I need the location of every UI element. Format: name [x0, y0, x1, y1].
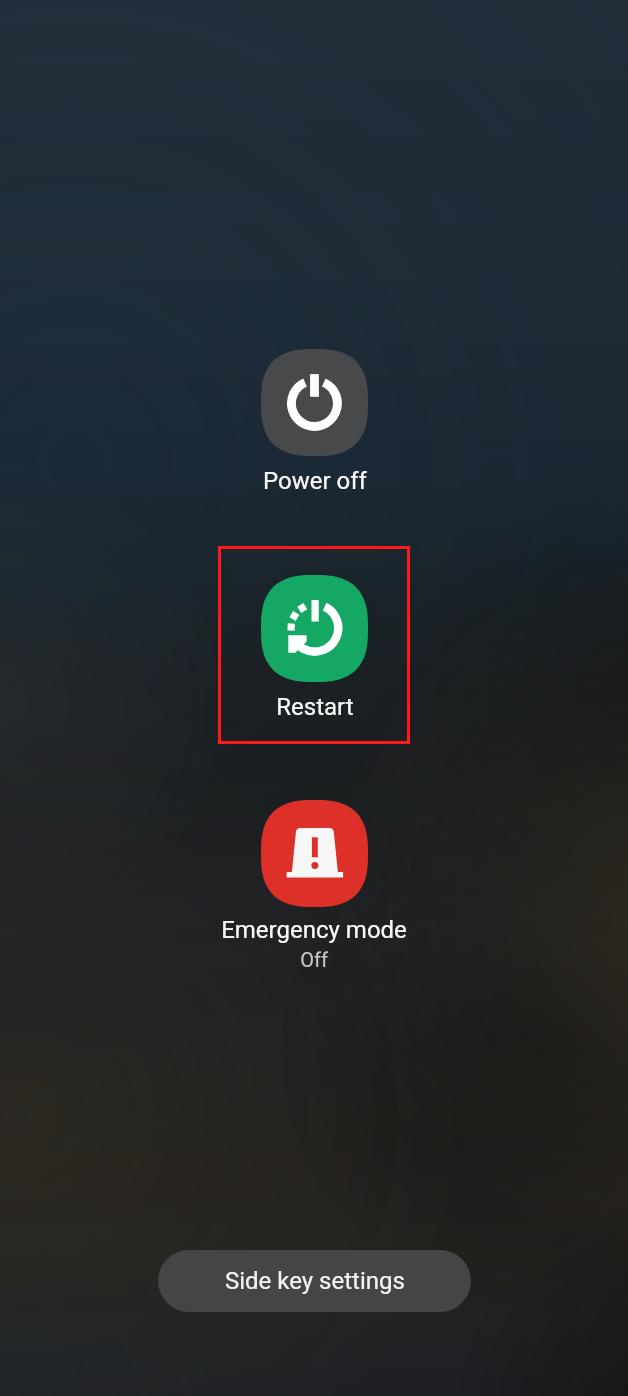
- button[interactable]: Restart: [184, 575, 444, 725]
- button[interactable]: Emergency mode: [184, 800, 444, 980]
- staticText: Restart: [276, 693, 354, 721]
- staticText: Emergency mode: [221, 916, 407, 944]
- button[interactable]: Side key settings: [158, 1250, 471, 1312]
- staticText: Off: [300, 948, 328, 971]
- staticText: Power off: [263, 467, 367, 495]
- button[interactable]: Power off: [184, 349, 444, 499]
- staticText: Side key settings: [225, 1267, 405, 1295]
